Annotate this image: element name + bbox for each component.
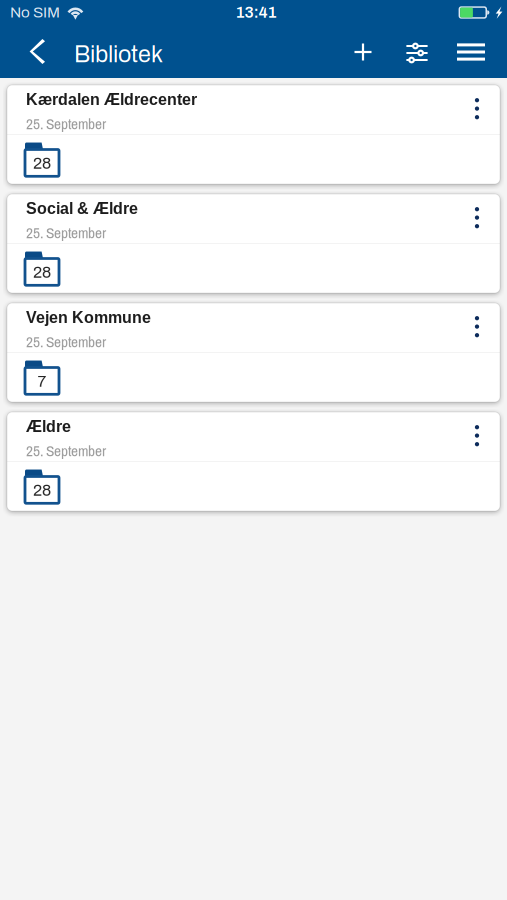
button[interactable]: Menu [448, 25, 494, 78]
button[interactable]: Bibliotek [74, 22, 194, 81]
staticText: 25. September [26, 331, 106, 352]
staticText: 13:41 [235, 4, 276, 21]
button[interactable]: Kærdalen Ældrecenter [7, 85, 500, 184]
button[interactable]: Ældre [7, 412, 500, 511]
staticText: No SIM [10, 4, 60, 21]
button[interactable]: Add [340, 25, 386, 78]
button[interactable]: Vejen Kommune [7, 303, 500, 402]
staticText: Social & Ældre [26, 199, 138, 217]
staticText: 25. September [26, 440, 106, 461]
button[interactable]: More options [455, 87, 499, 131]
button[interactable]: More options [455, 414, 499, 458]
button[interactable]: Social & Ældre [7, 194, 500, 293]
button[interactable]: More options [455, 196, 499, 240]
button[interactable]: Back [15, 25, 59, 78]
staticText: Ældre [26, 417, 71, 435]
staticText: Bibliotek [74, 42, 163, 67]
staticText: 28 [33, 482, 51, 499]
staticText: Kærdalen Ældrecenter [26, 90, 197, 108]
staticText: 28 [33, 155, 51, 172]
staticText: Vejen Kommune [26, 308, 151, 326]
staticText: 7 [37, 373, 46, 390]
button[interactable]: Filter [394, 26, 440, 79]
staticText: 28 [33, 264, 51, 281]
staticText: 25. September [26, 113, 106, 134]
staticText: 25. September [26, 222, 106, 243]
button[interactable]: More options [455, 305, 499, 349]
